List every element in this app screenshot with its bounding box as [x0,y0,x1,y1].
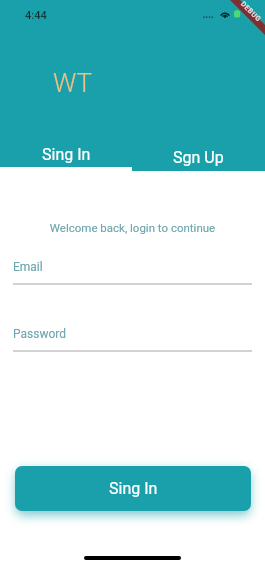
staticText: WT [53,68,93,98]
staticText: Welcome back, login to continue [0,221,265,234]
button[interactable]: Sing In [15,466,251,511]
staticText: Sing In [109,479,158,498]
button[interactable]: Sgn Up [132,129,265,171]
staticText: Sing In [42,145,91,164]
staticText: Password [13,327,67,341]
staticText: Email [13,260,43,274]
button[interactable]: Sing In [0,129,132,171]
staticText: Sgn Up [173,148,224,167]
staticText: 4:44 [25,9,47,22]
staticText: DEBUG [239,0,263,24]
